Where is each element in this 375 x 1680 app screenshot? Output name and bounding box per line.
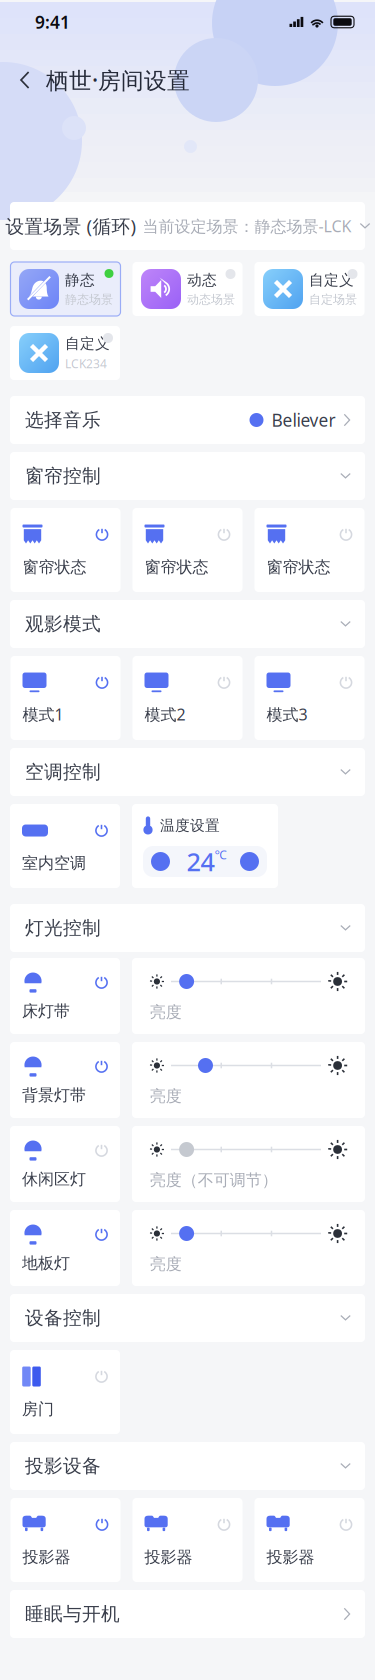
staticText: 设置场景 (循环) [5, 214, 136, 238]
button[interactable]: 床灯带 [10, 958, 120, 1034]
staticText: 模式2 [144, 704, 185, 725]
button[interactable]: 投影器 [254, 1498, 364, 1582]
button[interactable]: 选择音乐 [10, 396, 365, 444]
button[interactable]: 投影器 [10, 1498, 120, 1582]
staticText: 床灯带 [22, 1001, 70, 1021]
button[interactable]: 窗帘控制 [10, 452, 365, 500]
button[interactable]: 亮度 [132, 958, 365, 1034]
button[interactable]: 窗帘状态 [132, 508, 242, 592]
staticText: LCK234 [65, 355, 107, 371]
staticText: 模式3 [266, 704, 307, 725]
staticText: 睡眠与开机 [25, 1602, 120, 1625]
button[interactable]: 投影设备 [10, 1442, 365, 1490]
staticText: 选择音乐 [25, 408, 101, 431]
staticText: 自定义 [309, 271, 354, 289]
staticText: 投影设备 [25, 1454, 101, 1477]
button[interactable]: 室内空调 [10, 804, 120, 888]
staticText: 9:41 [35, 10, 70, 33]
staticText: 动态场景 [187, 292, 235, 307]
button[interactable]: 模式1 [10, 656, 120, 740]
staticText: 窗帘控制 [25, 464, 101, 487]
button[interactable]: 模式3 [254, 656, 364, 740]
button[interactable]: 空调控制 [10, 748, 365, 796]
button[interactable]: 模式2 [132, 656, 242, 740]
button[interactable]: 温度设置 [132, 804, 278, 888]
staticText: 窗帘状态 [144, 557, 208, 577]
staticText: 投影器 [266, 1547, 314, 1567]
staticText: 静态场景 [65, 292, 113, 307]
button[interactable]: 地板灯 [10, 1210, 120, 1286]
button[interactable]: 观影模式 [10, 600, 365, 648]
staticText: 室内空调 [22, 853, 86, 873]
button[interactable]: 亮度（不可调节） [132, 1126, 365, 1202]
button[interactable]: 窗帘状态 [10, 508, 120, 592]
staticText: 亮度（不可调节） [150, 1170, 278, 1190]
button[interactable]: 动态 [132, 262, 242, 316]
staticText: 窗帘状态 [266, 557, 330, 577]
button[interactable]: Back [10, 61, 40, 99]
staticText: 温度设置 [160, 816, 220, 834]
button[interactable]: 静态 [10, 262, 120, 316]
staticText: 背景灯带 [22, 1085, 86, 1105]
button[interactable]: 设备控制 [10, 1294, 365, 1342]
staticText: 房门 [22, 1399, 54, 1419]
button[interactable]: 房门 [10, 1350, 120, 1434]
button[interactable]: 背景灯带 [10, 1042, 120, 1118]
staticText: Believer [271, 408, 335, 431]
staticText: 空调控制 [25, 760, 101, 783]
button[interactable]: 睡眠与开机 [10, 1590, 365, 1638]
staticText: 窗帘状态 [22, 557, 86, 577]
staticText: 设备控制 [25, 1306, 101, 1329]
button[interactable]: 窗帘状态 [254, 508, 364, 592]
staticText: 投影器 [22, 1547, 70, 1567]
button[interactable]: 自定义 [10, 326, 120, 380]
staticText: 栖世·房间设置 [46, 65, 190, 95]
button[interactable]: 投影器 [132, 1498, 242, 1582]
button[interactable]: 自定义 [254, 262, 364, 316]
button[interactable]: 灯光控制 [10, 904, 365, 952]
staticText: 投影器 [144, 1547, 192, 1567]
staticText: ℃ [214, 847, 226, 863]
button[interactable]: 休闲区灯 [10, 1126, 120, 1202]
staticText: 24 [186, 845, 214, 878]
staticText: 地板灯 [22, 1253, 70, 1273]
staticText: 观影模式 [25, 612, 101, 635]
staticText: 动态 [187, 271, 217, 289]
button[interactable]: 设置场景 (循环) [10, 202, 365, 250]
staticText: 亮度 [150, 1086, 182, 1106]
button[interactable]: 亮度 [132, 1042, 365, 1118]
staticText: 静态 [65, 271, 95, 289]
staticText: 灯光控制 [25, 916, 101, 939]
staticText: 自定场景 [309, 292, 357, 307]
staticText: 模式1 [22, 704, 63, 725]
staticText: 当前设定场景：静态场景-LCK [142, 215, 351, 237]
staticText: 亮度 [150, 1002, 182, 1022]
staticText: 自定义 [65, 334, 110, 352]
staticText: 亮度 [150, 1254, 182, 1274]
button[interactable]: 亮度 [132, 1210, 365, 1286]
staticText: 休闲区灯 [22, 1169, 86, 1189]
